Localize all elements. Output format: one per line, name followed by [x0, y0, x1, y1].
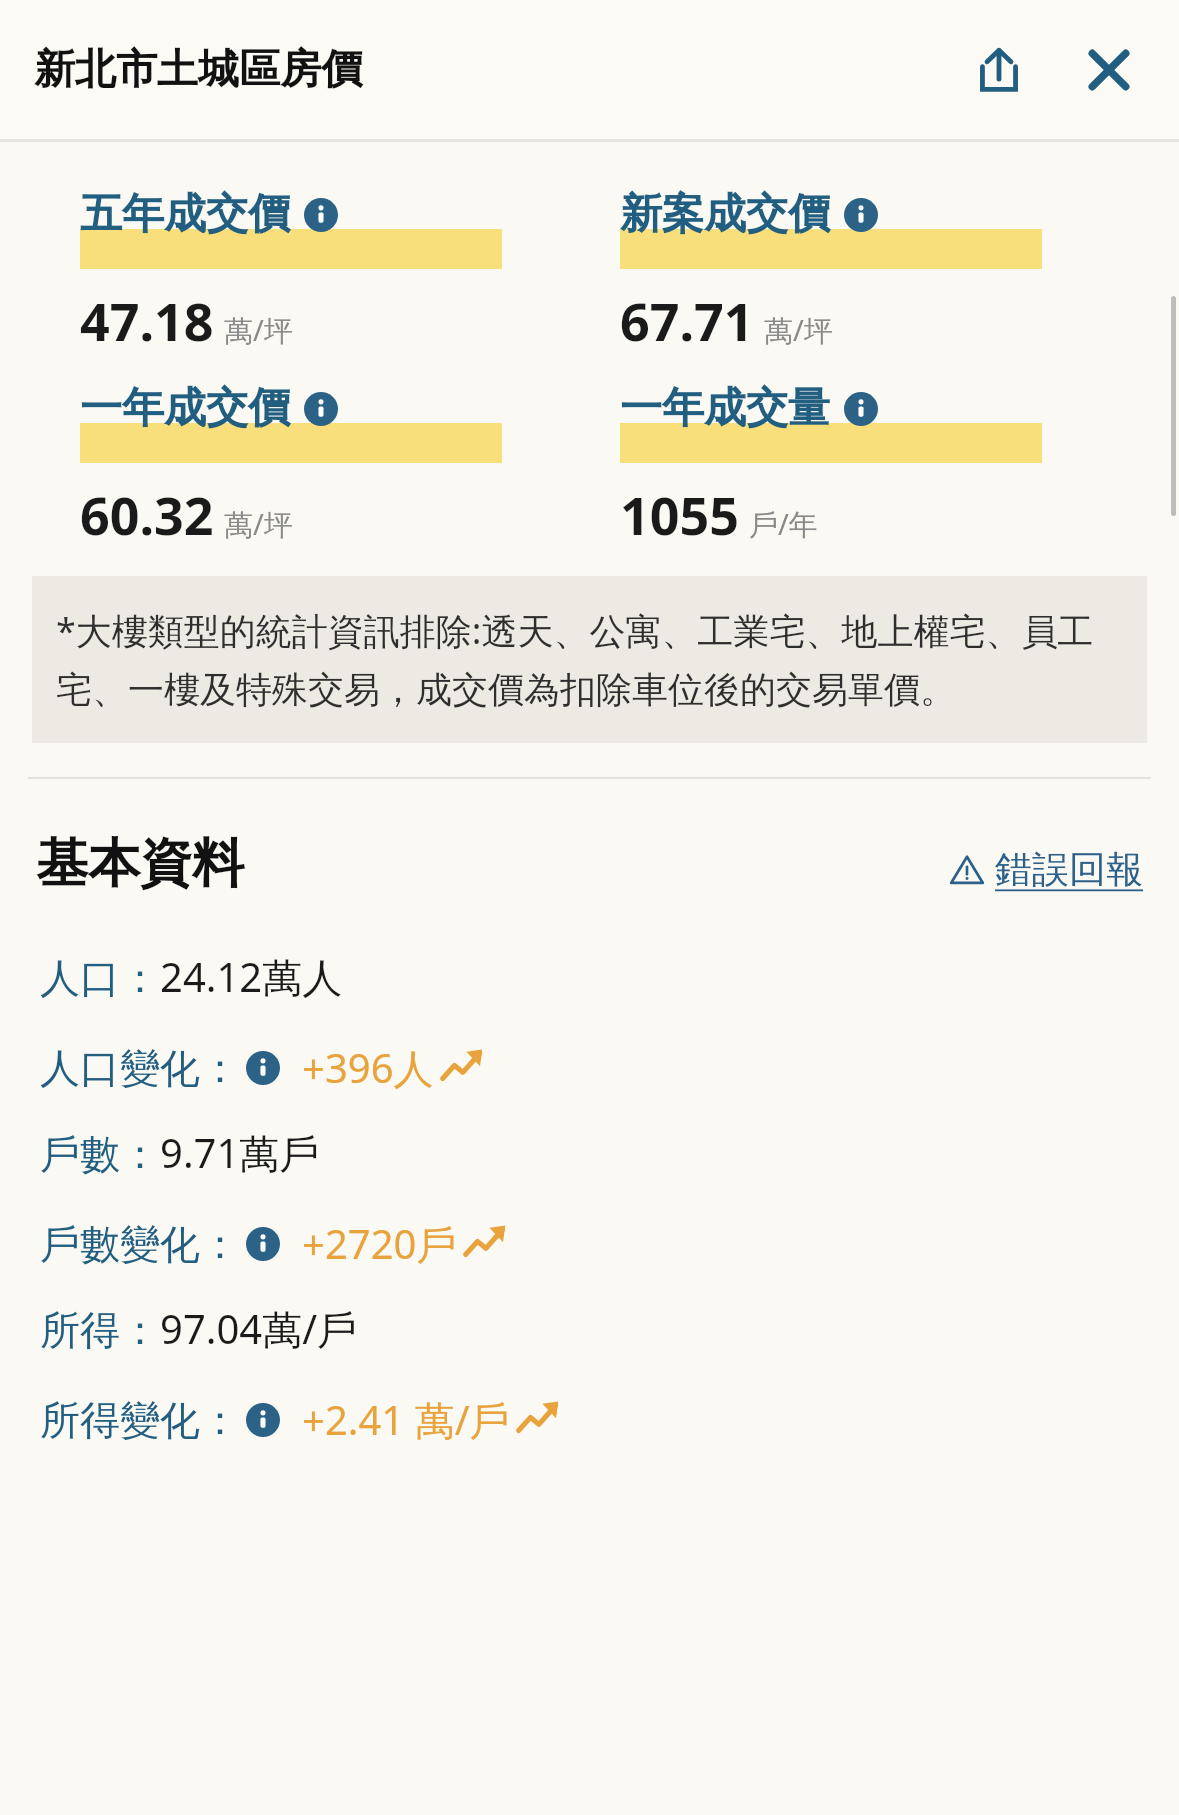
button[interactable]: Info — [844, 392, 878, 426]
staticText: 戶數：9.71萬戶 — [40, 1125, 320, 1180]
button[interactable]: Info — [246, 1051, 280, 1085]
staticText: 47.18 — [80, 285, 214, 356]
staticText: 五年成交價 — [80, 188, 290, 241]
button[interactable]: Info — [304, 392, 338, 426]
staticText: +396人 — [302, 1040, 434, 1095]
staticText: 錯誤回報 — [995, 846, 1143, 893]
button[interactable]: 錯誤回報 — [949, 846, 1143, 897]
staticText: 戶數變化： — [40, 1219, 240, 1269]
staticText: *大樓類型的統計資訊排除:透天、公寓、工業宅、地上權宅、員工宅、一樓及特殊交易，… — [56, 606, 1123, 713]
button[interactable]: Info — [246, 1227, 280, 1261]
staticText: +2.41 萬/戶 — [302, 1392, 510, 1447]
staticText: 一年成交量 — [620, 382, 830, 435]
button[interactable]: Info — [304, 198, 338, 232]
staticText: 所得：97.04萬/戶 — [40, 1301, 358, 1356]
staticText: 基本資料 — [36, 831, 244, 897]
staticText: 67.71 — [620, 285, 754, 356]
staticText: 60.32 — [80, 479, 214, 550]
staticText: 新案成交價 — [620, 188, 830, 241]
staticText: 新北市土城區房價 — [34, 44, 362, 96]
staticText: 1055 — [620, 479, 739, 550]
staticText: 萬/坪 — [764, 310, 833, 350]
staticText: 萬/坪 — [224, 310, 293, 350]
staticText: 所得變化： — [40, 1395, 240, 1445]
staticText: 萬/坪 — [224, 504, 293, 544]
button[interactable]: Share — [951, 22, 1047, 118]
staticText: 一年成交價 — [80, 382, 290, 435]
staticText: +2720戶 — [302, 1216, 457, 1271]
staticText: 人口變化： — [40, 1043, 240, 1093]
button[interactable]: Info — [844, 198, 878, 232]
button[interactable]: Info — [246, 1403, 280, 1437]
button[interactable]: Close — [1061, 22, 1157, 118]
staticText: 戶/年 — [749, 504, 818, 544]
staticText: 人口：24.12萬人 — [40, 949, 343, 1004]
